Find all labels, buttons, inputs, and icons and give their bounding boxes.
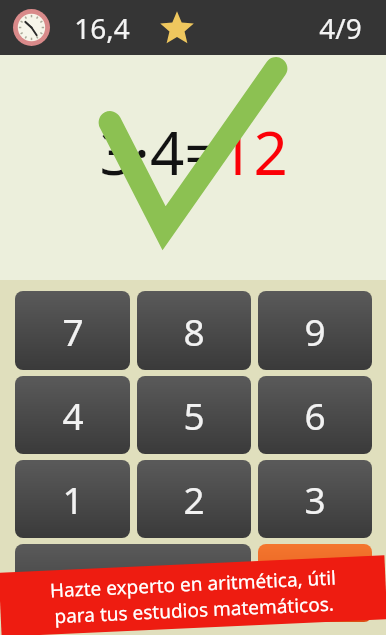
staticText: 16,4 <box>74 9 130 47</box>
staticText: Hazte experto en aritmética, útil para t… <box>49 564 338 628</box>
button[interactable]: Hazte experto en aritmética, útil para t… <box>0 555 386 635</box>
staticText: 1 <box>62 474 84 524</box>
button[interactable]: 5 <box>137 376 251 454</box>
staticText: 0 <box>122 558 144 608</box>
staticText: 6 <box>304 390 326 440</box>
button[interactable]: 1 <box>15 460 130 538</box>
button[interactable]: 7 <box>15 291 130 370</box>
staticText: 3 <box>304 474 326 524</box>
button[interactable]: 6 <box>258 376 372 454</box>
staticText: 8 <box>183 306 205 356</box>
button[interactable]: 4 <box>15 376 130 454</box>
button[interactable]: 2 <box>137 460 251 538</box>
staticText: 5 <box>183 390 205 440</box>
staticText: 3·4= <box>99 111 219 193</box>
staticText: 9 <box>304 306 326 356</box>
staticText: 4/9 <box>319 9 362 47</box>
staticText: 7 <box>62 306 84 356</box>
button[interactable]: 0 <box>15 544 251 622</box>
button[interactable]: 8 <box>137 291 251 370</box>
staticText: 4 <box>62 390 84 440</box>
button[interactable]: 9 <box>258 291 372 370</box>
button[interactable]: Delete <box>258 544 372 622</box>
staticText: 12 <box>219 111 288 193</box>
staticText: 2 <box>183 474 205 524</box>
button[interactable]: 3 <box>258 460 372 538</box>
